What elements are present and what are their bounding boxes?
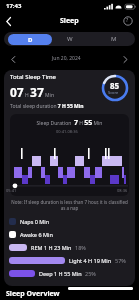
staticText: 18%: [75, 244, 86, 251]
button[interactable]: REM 1 H 23 Min: [9, 242, 86, 252]
button[interactable]: [11, 56, 16, 63]
button[interactable]: D: [8, 34, 52, 45]
staticText: Total sleep duration 7 H 55 Min: [10, 103, 84, 110]
button[interactable]: [6, 17, 12, 26]
staticText: M: [111, 35, 117, 43]
button[interactable]: M: [93, 32, 135, 46]
staticText: 85: [110, 80, 120, 91]
staticText: 08:36: [117, 188, 128, 193]
button[interactable]: Awake 6 Min: [9, 229, 53, 239]
staticText: Score: [108, 90, 119, 95]
button[interactable]: [123, 56, 128, 63]
staticText: D: [28, 36, 33, 44]
staticText: Total Sleep Time: [10, 73, 56, 81]
staticText: 07 H 37 Min: [10, 84, 54, 100]
button[interactable]: ?: [123, 16, 133, 26]
button[interactable]: Deep 1 H 55 Min: [9, 268, 96, 278]
staticText: Jun 20, 2024: [52, 55, 81, 62]
staticText: Sleep Duration 7 H 55 Min: [0, 118, 139, 128]
staticText: 17:43: [6, 2, 22, 10]
staticText: 05:41: [6, 188, 17, 193]
staticText: Naps 0 Min: [20, 218, 50, 225]
staticText: 00:41-08:36: [56, 129, 78, 134]
staticText: Deep 1 H 55 Min: [39, 270, 82, 277]
staticText: as a nap: [0, 205, 139, 211]
staticText: W: [67, 35, 73, 43]
button[interactable]: Light 4 H 19 Min: [9, 255, 126, 265]
staticText: Sleep: [60, 16, 79, 26]
button[interactable]: W: [49, 32, 91, 46]
staticText: ?: [126, 17, 129, 24]
staticText: 57%: [115, 257, 126, 264]
staticText: Awake 6 Min: [20, 231, 53, 238]
staticText: Light 4 H 19 Min: [69, 257, 112, 264]
staticText: 25%: [85, 270, 96, 277]
staticText: Sleep Overview: [6, 289, 60, 299]
button[interactable]: Naps 0 Min: [9, 216, 50, 226]
staticText: Note: If sleep duration is less than 7 h…: [0, 199, 139, 205]
staticText: REM 1 H 23 Min: [31, 244, 72, 251]
